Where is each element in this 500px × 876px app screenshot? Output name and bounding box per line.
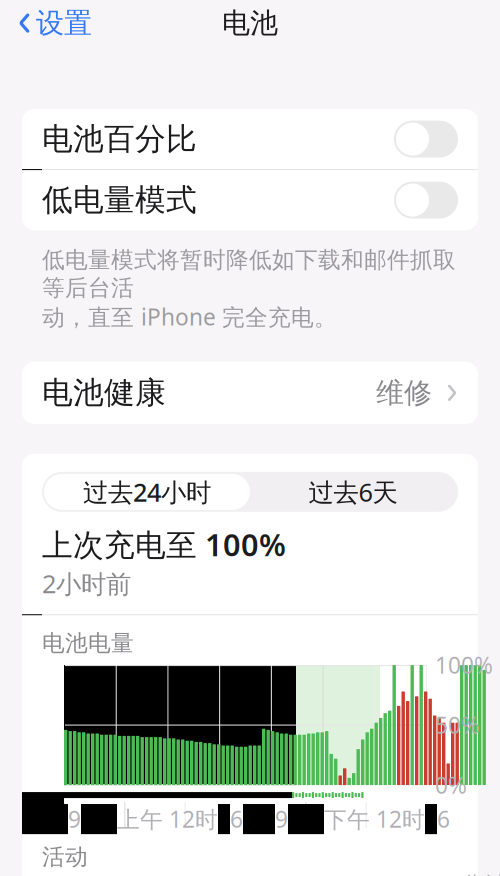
- staticText: 100%: [435, 650, 493, 680]
- staticText: 6: [437, 804, 450, 834]
- staticText: 2小时前: [42, 567, 131, 600]
- button[interactable]: 低电量模式: [22, 170, 478, 230]
- staticText: 电池健康: [42, 374, 166, 412]
- staticText: 电池百分比: [42, 120, 197, 158]
- staticText: 上午 12时: [117, 804, 218, 834]
- staticText: 50%: [435, 710, 480, 740]
- staticText: 电池电量: [42, 629, 134, 657]
- staticText: 电池: [222, 6, 278, 40]
- button[interactable]: 过去6天: [250, 474, 456, 510]
- button[interactable]: 电池百分比: [22, 109, 478, 169]
- staticText: 设置: [36, 6, 92, 40]
- staticText: 维修: [376, 376, 432, 410]
- staticText: 60分钟: [435, 869, 500, 876]
- button[interactable]: 过去24小时: [44, 474, 250, 510]
- staticText: 活动: [42, 843, 88, 871]
- staticText: 低电量模式将暂时降低如下载和邮件抓取等后台活 动，直至 iPhone 完全充电。: [42, 246, 456, 332]
- staticText: 9: [68, 804, 81, 834]
- button[interactable]: 设置: [14, 0, 96, 46]
- staticText: 过去6天: [308, 475, 397, 509]
- staticText: 过去24小时: [83, 475, 211, 509]
- staticText: 6: [230, 804, 243, 834]
- staticText: 下午 12时: [324, 804, 425, 834]
- button[interactable]: 电池健康: [22, 362, 478, 424]
- staticText: 0%: [435, 770, 467, 800]
- staticText: 上次充电至 100%: [42, 524, 286, 565]
- staticText: 低电量模式: [42, 181, 197, 219]
- staticText: 9: [275, 804, 288, 834]
